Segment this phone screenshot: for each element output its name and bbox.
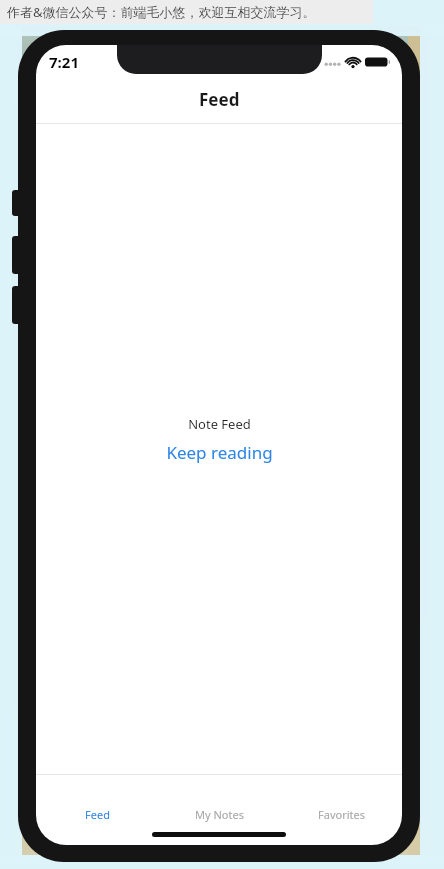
button[interactable]: Favorites xyxy=(280,775,402,845)
staticText: Favorites xyxy=(318,807,365,822)
button[interactable]: Keep reading xyxy=(166,441,273,464)
other: Wi-Fi xyxy=(346,57,360,68)
button[interactable]: My Notes xyxy=(158,775,280,845)
other: Battery full xyxy=(365,56,390,68)
staticText: Keep reading xyxy=(166,441,273,464)
staticText: Note Feed xyxy=(188,415,251,433)
staticText: 作者&微信公众号：前端毛小悠，欢迎互相交流学习。 xyxy=(7,3,316,21)
staticText: Feed xyxy=(199,88,240,111)
button[interactable]: Feed xyxy=(36,775,158,845)
staticText: Feed xyxy=(85,807,110,822)
staticText: My Notes xyxy=(195,807,244,822)
staticText: 7:21 xyxy=(49,52,79,72)
other: Cellular signal xyxy=(324,58,341,67)
